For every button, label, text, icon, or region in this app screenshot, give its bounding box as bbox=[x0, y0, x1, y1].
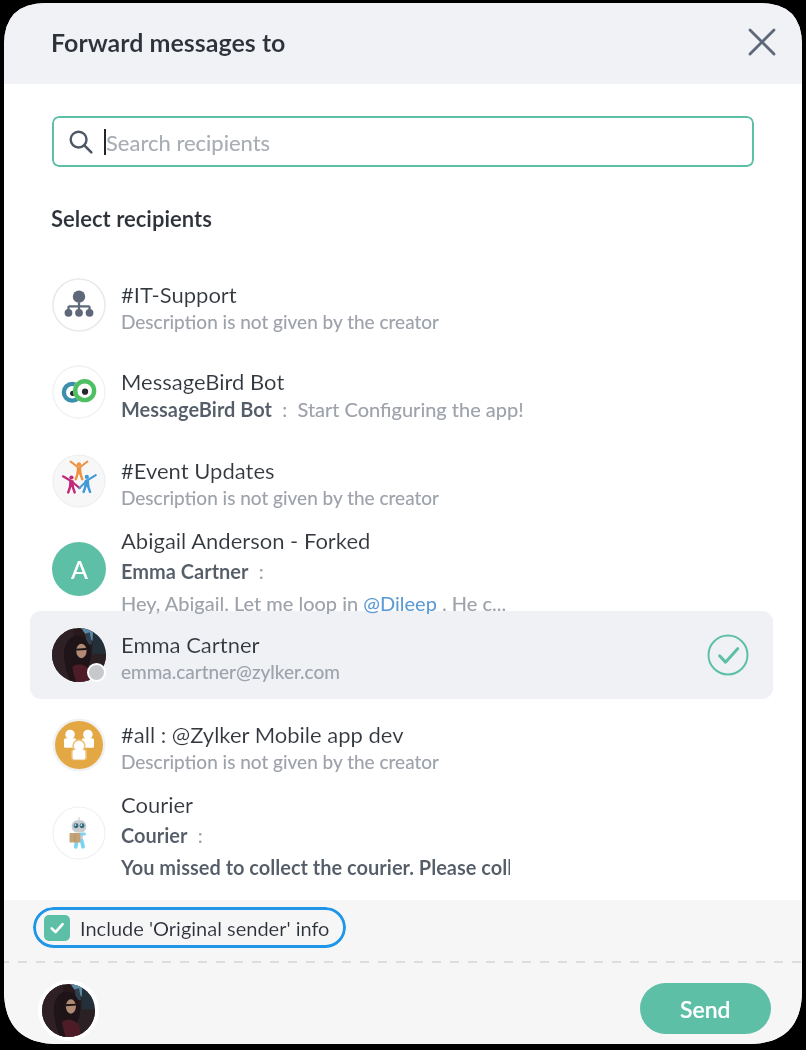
staticText: Description is not given by the creator bbox=[121, 310, 439, 333]
staticText: Description is not given by the creator bbox=[121, 486, 439, 509]
staticText: Emma Cartner bbox=[121, 631, 260, 657]
button[interactable]: Selected bbox=[707, 634, 749, 676]
staticText: #IT-Support bbox=[121, 281, 237, 307]
button[interactable]: Close bbox=[739, 19, 785, 65]
button[interactable]: #Event Updates bbox=[0, 437, 806, 525]
button[interactable]: Search recipients bbox=[52, 116, 754, 167]
button[interactable]: Emma Cartner bbox=[0, 611, 806, 699]
button[interactable]: Send bbox=[640, 983, 771, 1034]
button[interactable]: MessageBird Bot bbox=[0, 348, 806, 436]
staticText: Courier bbox=[121, 791, 194, 817]
staticText: Include 'Original sender' info bbox=[80, 916, 330, 940]
button[interactable]: #IT-Support bbox=[0, 261, 806, 349]
staticText: #all : @Zylker Mobile app dev bbox=[121, 721, 404, 747]
staticText: emma.cartner@zylker.com bbox=[121, 660, 340, 683]
staticText: Hey, Abigail. Let me loop in @Dileep . H… bbox=[121, 591, 507, 615]
staticText: Send bbox=[680, 995, 731, 1023]
staticText: #Event Updates bbox=[121, 457, 275, 483]
button[interactable]: #all : @Zylker Mobile app dev bbox=[0, 701, 806, 789]
staticText: MessageBird Bot bbox=[121, 368, 285, 394]
staticText: Forward messages to bbox=[51, 27, 286, 57]
staticText: A bbox=[71, 554, 88, 584]
staticText: Abigail Anderson - Forked bbox=[121, 527, 371, 553]
staticText: You missed to collect the courier. Pleas… bbox=[121, 855, 510, 879]
staticText: Courier : bbox=[121, 823, 203, 847]
staticText: Search recipients bbox=[106, 129, 271, 155]
staticText: MessageBird Bot : Start Configuring the … bbox=[121, 397, 524, 421]
staticText: Emma Cartner : bbox=[121, 559, 264, 583]
button[interactable]: Include 'Original sender' info bbox=[44, 907, 330, 948]
staticText: Description is not given by the creator bbox=[121, 750, 439, 773]
button[interactable]: Courier bbox=[0, 789, 806, 877]
staticText: Select recipients bbox=[51, 205, 212, 231]
button[interactable]: A bbox=[0, 525, 806, 613]
